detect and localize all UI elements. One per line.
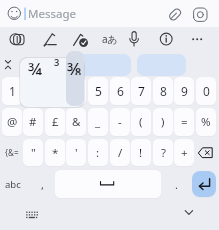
staticText: abc — [5, 178, 21, 191]
button[interactable]: - — [110, 108, 130, 136]
button[interactable]: ? — [153, 139, 173, 166]
staticText: ¾ — [28, 57, 42, 75]
staticText: _ — [95, 114, 101, 130]
staticText: - — [118, 114, 122, 130]
button[interactable] — [181, 205, 197, 219]
button[interactable]: abc — [2, 170, 23, 198]
staticText: £ — [52, 114, 59, 130]
button[interactable]: . — [166, 170, 186, 198]
button[interactable] — [66, 51, 84, 106]
button[interactable]: / — [110, 139, 130, 166]
button[interactable] — [6, 2, 23, 25]
button[interactable]: 6 — [110, 77, 130, 105]
button[interactable]: 4 — [66, 77, 86, 105]
staticText: 9 — [181, 83, 188, 99]
button[interactable]: % — [196, 108, 216, 136]
button[interactable] — [0, 0, 219, 27]
staticText: , — [41, 177, 44, 192]
staticText: % — [201, 114, 211, 130]
button[interactable] — [192, 171, 216, 197]
staticText: ⅜ — [67, 57, 82, 75]
button[interactable] — [158, 30, 176, 48]
staticText: = — [181, 114, 188, 130]
staticText: ! — [139, 145, 143, 161]
button[interactable] — [75, 54, 131, 76]
button[interactable]: {&= — [2, 139, 22, 166]
button[interactable]: " — [23, 139, 43, 166]
button[interactable]: ( — [131, 108, 151, 136]
staticText: Message — [28, 6, 76, 22]
button[interactable]: = — [174, 108, 194, 136]
staticText: + — [181, 145, 188, 161]
button[interactable]: 7 — [131, 77, 151, 105]
staticText: ' — [75, 145, 78, 161]
button[interactable]: £ — [45, 108, 65, 136]
button[interactable]: # — [23, 108, 43, 136]
button[interactable]: _ — [88, 108, 108, 136]
button[interactable]: : — [88, 139, 108, 166]
button[interactable] — [55, 170, 161, 198]
button[interactable]: @ — [2, 108, 22, 136]
button[interactable] — [126, 30, 144, 48]
button[interactable] — [71, 30, 89, 48]
button[interactable] — [137, 54, 186, 76]
staticText: {&= — [5, 147, 19, 158]
staticText: ? — [161, 145, 166, 161]
button[interactable] — [189, 30, 207, 48]
button[interactable]: ) — [153, 108, 173, 136]
button[interactable]: 8 — [153, 77, 173, 105]
staticText: : — [96, 145, 100, 161]
staticText: 1 — [9, 83, 16, 99]
button[interactable]: ' — [66, 139, 86, 166]
button[interactable]: , — [32, 170, 52, 198]
button[interactable]: ! — [131, 139, 151, 166]
button[interactable] — [41, 30, 59, 48]
button[interactable]: + — [174, 139, 194, 166]
button[interactable]: & — [66, 108, 86, 136]
staticText: ³ — [54, 56, 60, 71]
button[interactable] — [191, 4, 211, 24]
button[interactable]: 5 — [88, 77, 108, 105]
staticText: ( — [139, 114, 143, 130]
staticText: 0 — [203, 83, 210, 99]
button[interactable] — [9, 30, 27, 48]
staticText: @ — [7, 114, 18, 130]
button[interactable]: 1 — [2, 77, 22, 105]
staticText: 7 — [138, 83, 145, 99]
button[interactable]: 0 — [196, 77, 216, 105]
staticText: . — [175, 177, 178, 192]
staticText: / — [118, 145, 123, 161]
staticText: # — [29, 114, 37, 130]
button[interactable] — [2, 57, 15, 72]
button[interactable] — [196, 139, 216, 166]
staticText: * — [52, 145, 59, 161]
staticText: 5 — [95, 83, 102, 99]
staticText: & — [72, 114, 81, 130]
button[interactable] — [165, 4, 185, 24]
staticText: 6 — [117, 83, 124, 99]
button[interactable]: 9 — [174, 77, 194, 105]
button[interactable] — [22, 206, 40, 222]
button[interactable] — [101, 30, 119, 48]
staticText: " — [31, 145, 36, 161]
staticText: ) — [161, 114, 165, 130]
staticText: 8 — [160, 83, 167, 99]
staticText: aあ — [102, 32, 118, 46]
button[interactable]: * — [45, 139, 65, 166]
